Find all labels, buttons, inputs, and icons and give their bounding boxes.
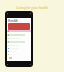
button[interactable] xyxy=(7,30,31,32)
button[interactable] xyxy=(7,51,31,52)
button[interactable] xyxy=(8,23,30,30)
staticText: Caring for your health xyxy=(0,6,64,10)
staticText: Health xyxy=(8,19,19,23)
button[interactable] xyxy=(7,54,31,55)
button[interactable] xyxy=(7,38,31,39)
button[interactable] xyxy=(7,41,31,43)
button[interactable] xyxy=(7,45,31,46)
button[interactable] xyxy=(7,34,31,36)
button[interactable] xyxy=(7,48,31,49)
